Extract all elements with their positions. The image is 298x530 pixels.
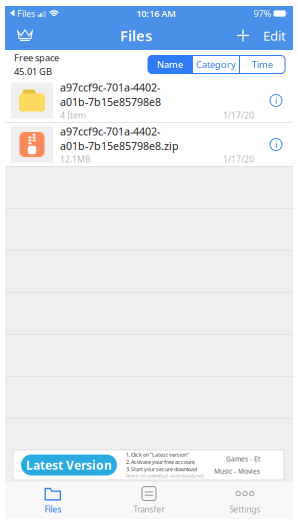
staticText: 12.1MB xyxy=(60,153,91,165)
staticText: Edit xyxy=(263,26,286,45)
staticText: Category xyxy=(196,58,236,71)
button[interactable]: Premium xyxy=(7,23,43,48)
staticText: Music - Movies xyxy=(214,466,260,476)
staticText: 1/17/20 xyxy=(223,153,254,165)
staticText: a01b-7b15e85798e8 xyxy=(60,95,161,109)
staticText: 1/17/20 xyxy=(223,109,254,121)
staticText: i xyxy=(275,94,277,107)
button[interactable]: Settings xyxy=(197,480,293,521)
staticText: 2. Activate your free account xyxy=(126,458,195,465)
button[interactable]: Name xyxy=(148,55,192,73)
staticText: a01b-7b15e85798e8.zip xyxy=(60,139,179,153)
staticText: Files xyxy=(120,25,152,45)
button[interactable]: a97ccf9c-701a-4402- xyxy=(5,123,293,167)
staticText: 4 Item xyxy=(60,109,86,121)
staticText: Time xyxy=(252,58,273,71)
staticText: Files xyxy=(44,504,61,515)
staticText: Free space xyxy=(14,51,59,64)
staticText: Settings xyxy=(229,504,260,515)
staticText: 45.01 GB xyxy=(14,65,52,78)
staticText: Name xyxy=(157,58,183,71)
staticText: Latest Version xyxy=(26,457,112,473)
staticText: Transfer xyxy=(133,504,164,515)
button[interactable]: a97ccf9c-701a-4402- xyxy=(5,79,293,123)
staticText: 10:16 AM xyxy=(136,7,176,20)
staticText: a97ccf9c-701a-4402- xyxy=(60,124,160,139)
staticText: Find it on unlimited-downloads.net xyxy=(126,473,204,479)
button[interactable]: Files xyxy=(5,480,101,521)
staticText: a97ccf9c-701a-4402- xyxy=(60,80,160,95)
staticText: 97% xyxy=(253,7,271,20)
button[interactable]: Add xyxy=(229,23,257,47)
staticText: 1. Click on "Latest version" xyxy=(126,451,189,458)
button[interactable]: Time xyxy=(240,55,285,73)
button[interactable]: Transfer xyxy=(101,480,197,521)
staticText: Games - Et xyxy=(226,454,260,463)
button[interactable]: Latest Version xyxy=(21,454,117,475)
staticText: Files xyxy=(17,7,35,20)
staticText: i xyxy=(275,138,277,151)
staticText: 3. Start your secure download xyxy=(126,465,197,473)
button[interactable]: Edit xyxy=(257,20,293,51)
button[interactable]: Category xyxy=(193,55,239,73)
